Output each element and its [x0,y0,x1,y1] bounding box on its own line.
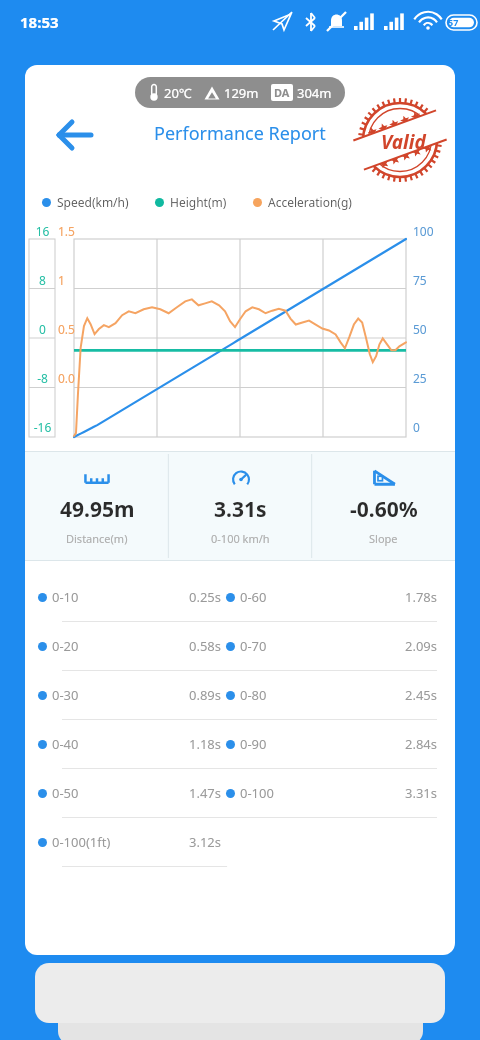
staticText: Slope [369,531,398,546]
staticText: 3.31s [405,784,438,802]
staticText: 0-10 [52,588,79,606]
staticText: 0.25s [189,588,222,606]
staticText: 1.47s [189,784,222,802]
staticText: 3.12s [189,833,222,851]
staticText: 20℃ [164,84,192,102]
staticText: 1.78s [405,588,438,606]
staticText: Performance Report [154,121,326,146]
staticText: 0-80 [240,686,267,704]
staticText: Speed(km/h) [57,194,129,210]
staticText: 16 [30,223,55,239]
staticText: 1 [58,272,84,288]
button[interactable]: 0-30 [25,679,455,728]
staticText: 2.09s [405,637,438,655]
button[interactable]: 0-20 [25,630,455,679]
staticText: 0-90 [240,735,267,753]
staticText: 0-60 [240,588,267,606]
staticText: DA [274,85,290,100]
staticText: 0-100 [240,784,274,802]
staticText: 304m [297,84,332,102]
staticText: Acceleration(g) [268,194,352,210]
staticText: 1.18s [189,735,222,753]
button[interactable]: 0-100(1ft) [25,826,455,875]
staticText: 0-100 km/h [211,531,270,546]
staticText: 0-100(1ft) [52,833,111,851]
staticText: 0.5 [58,321,84,337]
staticText: 18:53 [20,12,59,32]
staticText: Height(m) [170,194,227,210]
staticText: 0.89s [189,686,222,704]
staticText: 0-40 [52,735,79,753]
staticText: 100 [413,223,447,239]
staticText: 57 [448,16,459,28]
staticText: -16 [30,419,55,435]
staticText: 0-70 [240,637,267,655]
button[interactable]: 0-50 [25,777,455,826]
button[interactable]: 0-10 [25,581,455,630]
staticText: -8 [30,370,55,386]
staticText: 2.45s [405,686,438,704]
staticText: Distance(m) [66,531,128,546]
staticText: 75 [413,272,447,288]
button[interactable]: 0-40 [25,728,455,777]
staticText: 0-50 [52,784,79,802]
staticText: 0.0 [58,370,84,386]
staticText: 49.95m [60,495,135,524]
staticText: -0.60% [350,495,418,524]
button[interactable]: -0.60% [312,451,455,561]
staticText: 0-30 [52,686,79,704]
staticText: 25 [413,370,447,386]
button[interactable]: 20℃ [135,77,345,108]
button[interactable]: 3.31s [169,451,312,561]
staticText: 129m [224,84,259,102]
staticText: 0 [30,321,55,337]
staticText: Valid [381,129,426,155]
staticText: 3.31s [214,495,267,524]
staticText: 2.84s [405,735,438,753]
button[interactable]: 49.95m [25,451,169,561]
staticText: 1.5 [58,223,84,239]
staticText: 0.58s [189,637,222,655]
button[interactable]: Back [51,111,99,159]
staticText: 8 [30,272,55,288]
staticText: 50 [413,321,447,337]
staticText: 0-20 [52,637,79,655]
staticText: 0 [413,419,447,435]
